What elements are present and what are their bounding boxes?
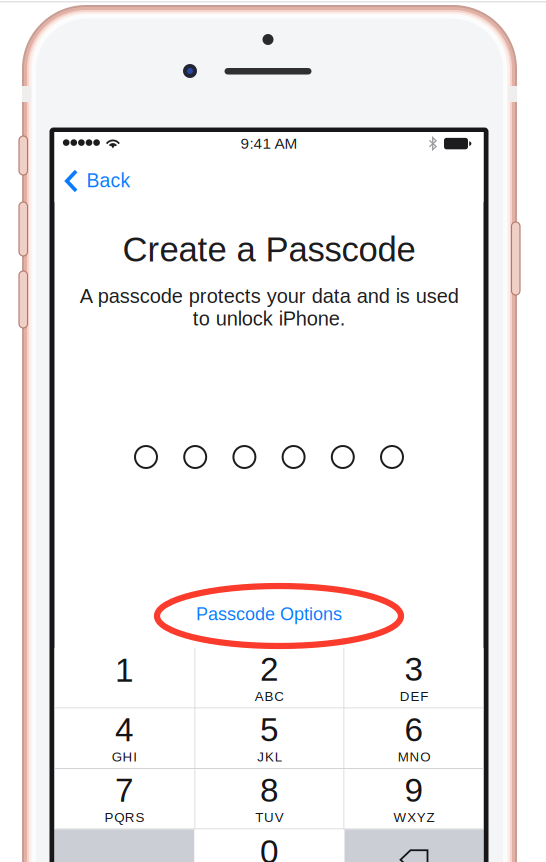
staticText: 7 (115, 772, 134, 809)
staticText: O (420, 749, 430, 764)
button[interactable]: 9 (344, 769, 483, 829)
button[interactable]: 6 (344, 708, 483, 769)
staticText: Z (426, 810, 434, 825)
staticText: 2 (260, 651, 279, 688)
staticText: T (255, 810, 263, 825)
button[interactable]: Delete (344, 829, 483, 862)
button[interactable]: 3 (344, 648, 483, 708)
button[interactable]: 5 (195, 708, 343, 769)
staticText: W (393, 810, 406, 825)
button[interactable]: Passcode Options (159, 593, 379, 635)
button[interactable]: 2 (195, 648, 343, 708)
staticText: V (275, 810, 284, 825)
staticText: 8 (260, 772, 279, 809)
staticText: A (255, 689, 264, 704)
staticText: 3 (404, 651, 423, 688)
staticText: U (264, 810, 274, 825)
staticText: P (104, 810, 113, 825)
staticText: 9:41 AM (240, 135, 297, 152)
staticText: 4 (115, 711, 134, 748)
staticText: 1 (115, 652, 134, 689)
staticText: F (420, 689, 428, 704)
button[interactable]: 4 (54, 708, 194, 769)
staticText: N (409, 749, 419, 764)
staticText: 6 (404, 711, 423, 748)
staticText: I (133, 749, 137, 764)
staticText: H (122, 749, 132, 764)
staticText: K (265, 749, 274, 764)
button[interactable]: 8 (195, 769, 343, 829)
staticText: B (264, 689, 273, 704)
button[interactable]: 7 (54, 769, 194, 829)
staticText: G (112, 749, 122, 764)
staticText: C (274, 689, 284, 704)
staticText: R (125, 810, 135, 825)
button[interactable]: Back (54, 159, 146, 203)
staticText: E (410, 689, 419, 704)
staticText: Back (86, 170, 130, 191)
staticText: A passcode protects your data and is use… (79, 285, 458, 330)
staticText: X (407, 810, 416, 825)
staticText: M (398, 749, 409, 764)
button[interactable]: 0 (195, 829, 343, 862)
staticText: L (275, 749, 282, 764)
staticText: Y (417, 810, 426, 825)
staticText: Q (114, 810, 124, 825)
staticText: D (400, 689, 410, 704)
button[interactable]: 1 (54, 648, 194, 708)
staticText: 9 (404, 772, 423, 809)
staticText: Passcode Options (196, 604, 342, 624)
staticText: 0 (260, 833, 279, 862)
staticText: 5 (260, 711, 279, 748)
staticText: Create a Passcode (122, 230, 415, 269)
staticText: S (136, 810, 145, 825)
staticText: J (257, 749, 264, 764)
